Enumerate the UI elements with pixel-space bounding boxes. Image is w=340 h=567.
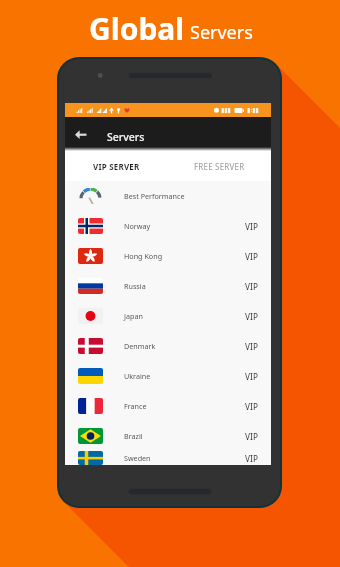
button[interactable]: Hong Kong	[65, 241, 271, 271]
staticText: VIP	[245, 371, 258, 382]
staticText: Servers	[107, 130, 145, 144]
staticText: Hong Kong	[124, 251, 163, 261]
staticText: VIP	[245, 341, 258, 352]
staticText: VIP	[245, 251, 258, 262]
button[interactable]: France	[65, 391, 271, 421]
button[interactable]: Sweden	[65, 451, 271, 465]
staticText: Japan	[124, 311, 143, 321]
staticText: Best Performance	[124, 191, 185, 201]
staticText: VIP	[245, 311, 258, 322]
staticText: VIP	[245, 431, 258, 442]
staticText: Global	[89, 8, 185, 49]
button[interactable]: Russia	[65, 271, 271, 301]
staticText: VIP SERVER	[93, 161, 140, 172]
staticText: Norway	[124, 221, 151, 231]
button[interactable]: Best Performance	[65, 181, 271, 211]
staticText: Denmark	[124, 341, 156, 351]
staticText: Sweden	[124, 453, 151, 463]
staticText: VIP	[245, 453, 258, 464]
button[interactable]: Ukraine	[65, 361, 271, 391]
button[interactable]: Back	[72, 125, 89, 142]
staticText: VIP	[245, 401, 258, 412]
staticText: VIP	[245, 221, 258, 232]
button[interactable]: Norway	[65, 211, 271, 241]
button[interactable]: Denmark	[65, 331, 271, 361]
staticText: Ukraine	[124, 371, 151, 381]
button[interactable]: FREE SERVER	[168, 147, 271, 181]
button[interactable]: Japan	[65, 301, 271, 331]
staticText: France	[124, 401, 147, 411]
staticText: Russia	[124, 281, 146, 291]
button[interactable]: VIP SERVER	[65, 147, 168, 181]
staticText: Brazil	[124, 431, 143, 441]
button[interactable]: Brazil	[65, 421, 271, 451]
staticText: VIP	[245, 281, 258, 292]
staticText: FREE SERVER	[194, 161, 245, 172]
staticText: Servers	[190, 20, 253, 45]
